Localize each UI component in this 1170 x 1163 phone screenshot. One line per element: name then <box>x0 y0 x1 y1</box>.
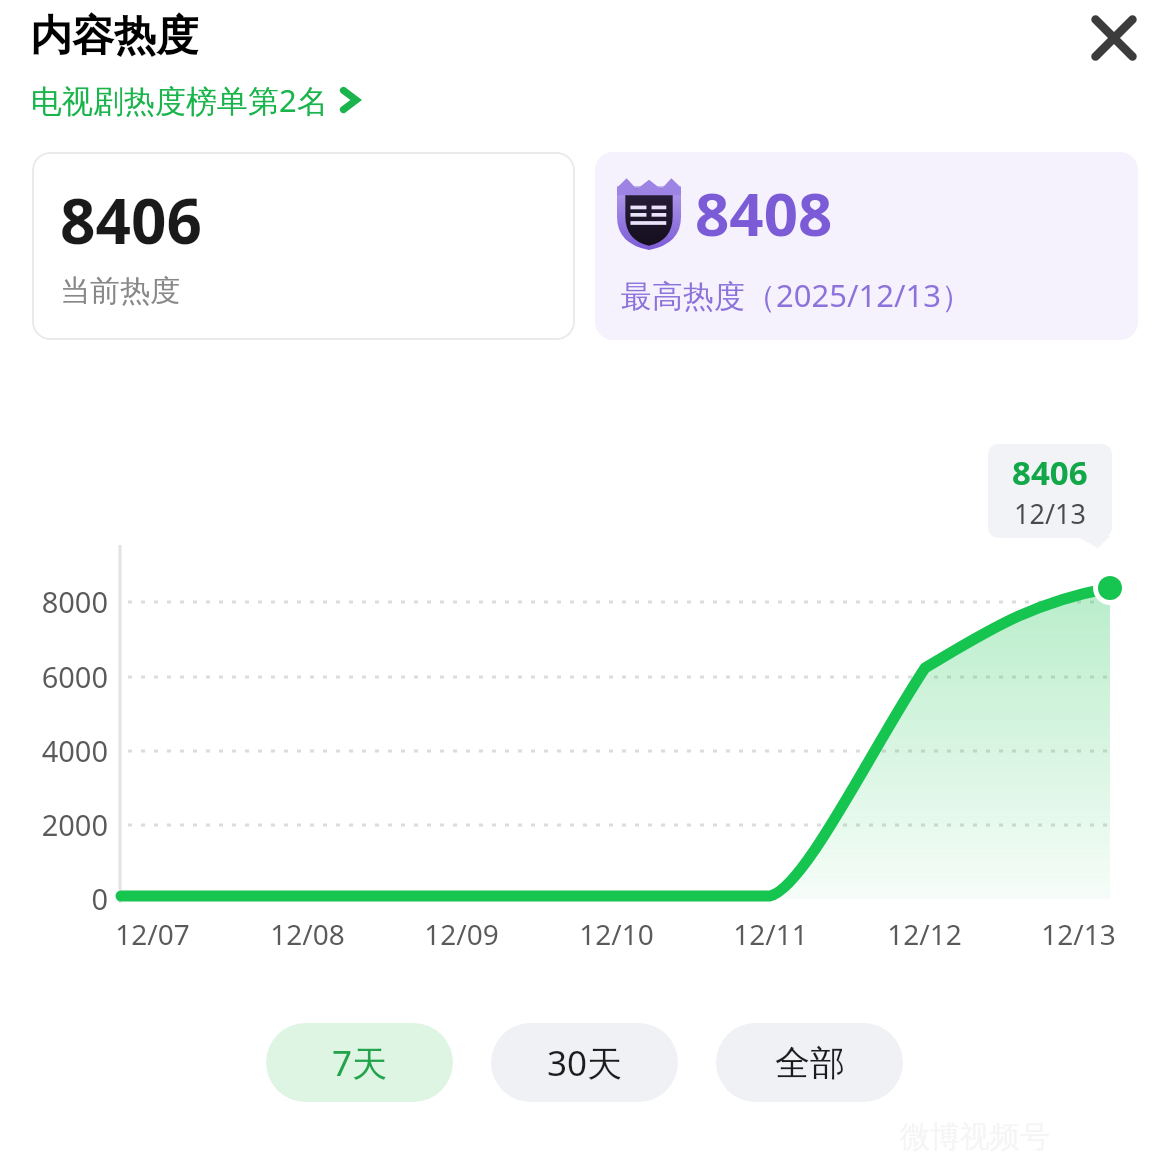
staticText: 12/09 <box>424 915 499 953</box>
staticText: 12/08 <box>270 915 345 953</box>
button[interactable]: 7天 <box>266 1023 453 1102</box>
button[interactable]: 电视剧热度榜单第2名 <box>28 76 364 124</box>
staticText: 30天 <box>547 1039 623 1087</box>
staticText: 微博视频号 <box>900 1118 1050 1156</box>
staticText: 12/11 <box>733 915 808 953</box>
staticText: 4000 <box>41 731 108 770</box>
staticText: 12/13 <box>1041 915 1116 953</box>
button[interactable]: 30天 <box>491 1023 678 1102</box>
button[interactable]: 8408 <box>595 152 1138 340</box>
staticText: 0 <box>91 879 108 918</box>
staticText: 8408 <box>695 172 833 254</box>
staticText: 12/12 <box>887 915 962 953</box>
staticText: 12/10 <box>579 915 654 953</box>
staticText: 12/07 <box>115 915 190 953</box>
staticText: 当前热度 <box>60 272 180 310</box>
staticText: 8406 <box>1012 450 1088 495</box>
button[interactable]: 8406 <box>32 152 575 340</box>
staticText: 6000 <box>41 657 108 696</box>
button[interactable]: 全部 <box>716 1023 903 1102</box>
staticText: 7天 <box>332 1039 388 1087</box>
staticText: 8000 <box>41 582 108 621</box>
staticText: 最高热度（2025/12/13） <box>621 274 972 316</box>
staticText: 2000 <box>41 805 108 844</box>
staticText: 内容热度 <box>30 10 198 63</box>
button[interactable]: Close <box>1074 0 1154 76</box>
staticText: 电视剧热度榜单第2名 <box>31 79 328 121</box>
staticText: 全部 <box>775 1041 845 1085</box>
staticText: 8406 <box>60 178 202 262</box>
staticText: 12/13 <box>1014 495 1086 532</box>
